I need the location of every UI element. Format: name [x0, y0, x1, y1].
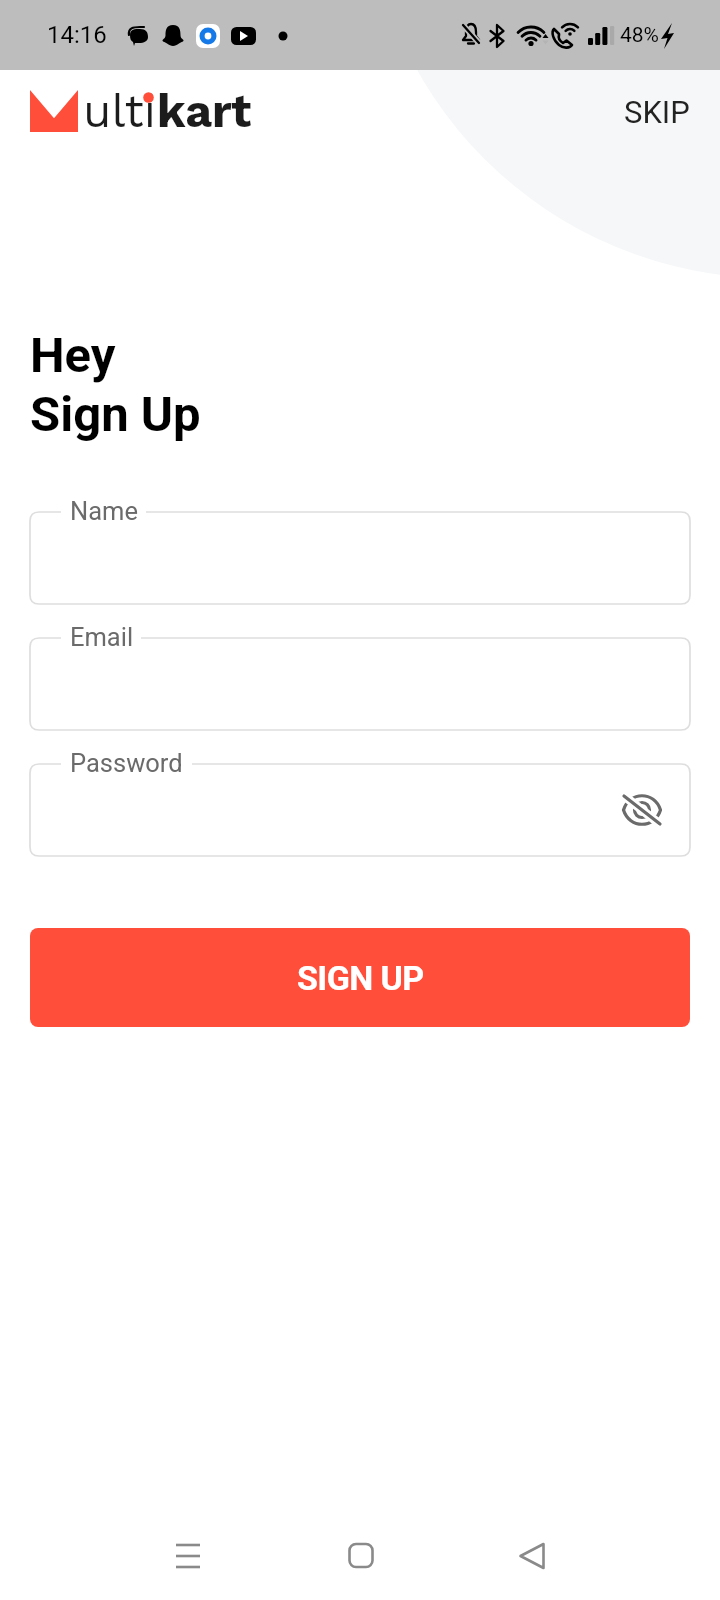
button[interactable]: Back [487, 1511, 577, 1600]
button[interactable]: Home [316, 1511, 406, 1600]
button[interactable]: Name [30, 512, 690, 604]
button[interactable]: Show password [618, 786, 666, 834]
staticText: Password [70, 748, 183, 778]
button[interactable]: Recent apps [143, 1511, 233, 1600]
staticText: Email [70, 622, 134, 652]
staticText: Sign Up [30, 386, 201, 443]
staticText: Hey [30, 327, 116, 384]
button[interactable]: Password [30, 764, 690, 856]
button[interactable]: Email [30, 638, 690, 730]
staticText: 48% [620, 23, 659, 48]
button[interactable]: SKIP [600, 80, 714, 144]
staticText: 14:16 [47, 21, 107, 49]
button[interactable]: SIGN UP [30, 928, 690, 1027]
staticText: kart [157, 84, 252, 138]
staticText: Name [70, 496, 138, 526]
staticText: SIGN UP [297, 958, 424, 998]
staticText: ulti [83, 84, 157, 138]
staticText: SKIP [624, 94, 690, 130]
